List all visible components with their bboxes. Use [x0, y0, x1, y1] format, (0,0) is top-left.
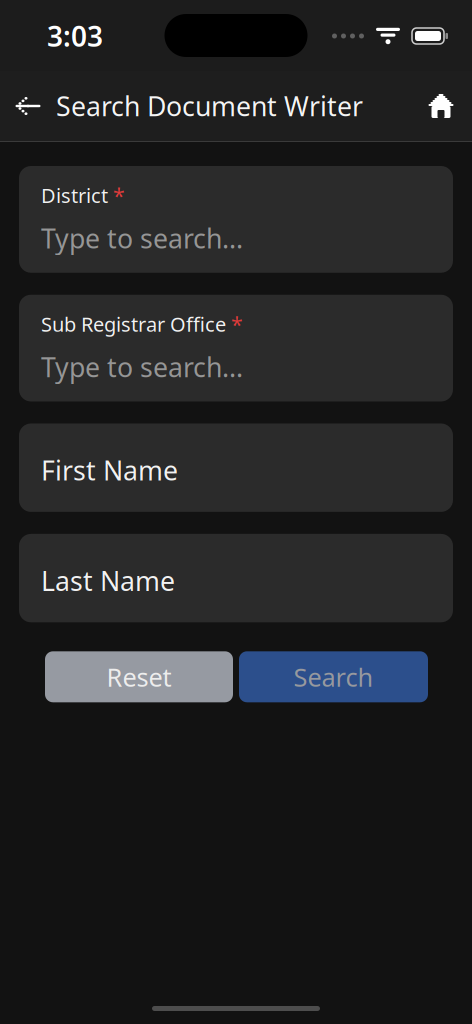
staticText: Type to search... [41, 220, 243, 256]
staticText: 3:03 [47, 17, 103, 55]
button[interactable]: Sub Registrar Office [19, 295, 453, 401]
staticText: Type to search... [41, 349, 243, 384]
button[interactable]: Back [0, 71, 56, 141]
staticText: Sub Registrar Office [41, 311, 226, 337]
staticText: Search [293, 660, 373, 694]
staticText: Search Document Writer [56, 88, 363, 124]
button[interactable]: First Name [19, 423, 453, 512]
staticText: First Name [41, 452, 178, 488]
staticText: * [113, 181, 125, 209]
button[interactable]: Last Name [19, 534, 453, 622]
staticText: Last Name [41, 563, 175, 598]
button[interactable]: Search [239, 651, 428, 702]
staticText: * [231, 310, 243, 338]
button[interactable]: Home [410, 71, 472, 141]
staticText: Reset [106, 660, 171, 694]
staticText: District [41, 182, 108, 208]
button[interactable]: District [19, 166, 453, 273]
button[interactable]: Reset [45, 651, 233, 702]
